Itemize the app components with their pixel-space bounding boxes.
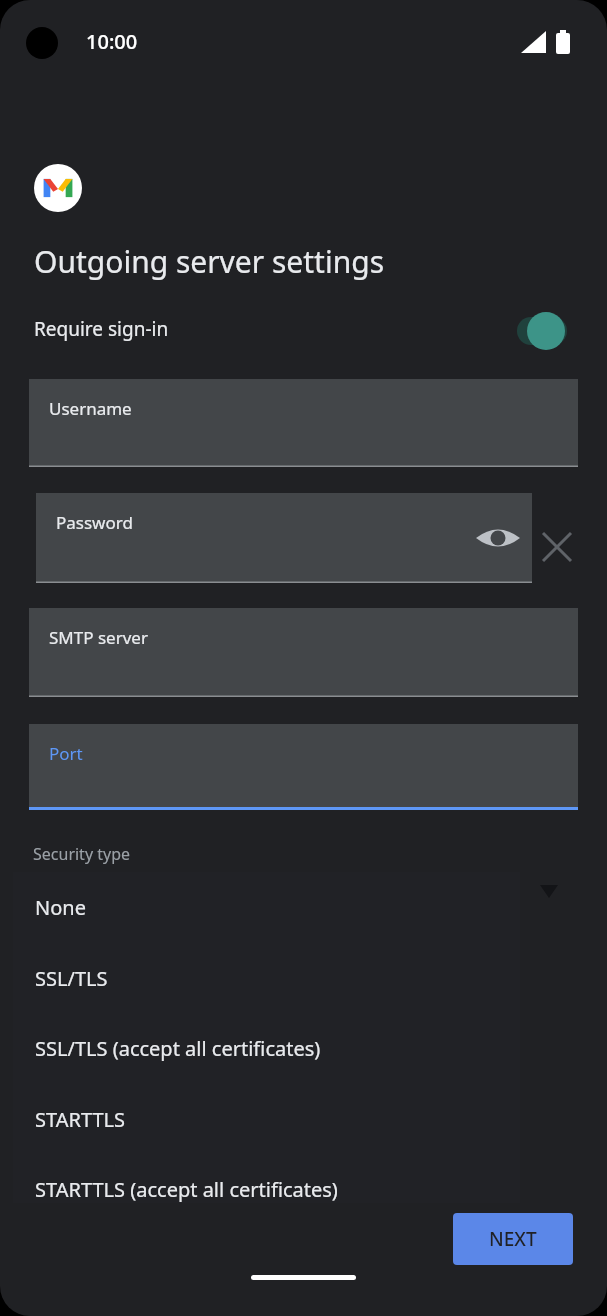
staticText: SMTP server [49, 626, 148, 649]
button[interactable]: None [13, 872, 520, 942]
staticText: STARTTLS (accept all certificates) [35, 1176, 338, 1203]
button[interactable]: SSL/TLS [13, 943, 520, 1013]
button[interactable]: Show password [472, 512, 524, 564]
staticText: None [35, 894, 86, 921]
button[interactable]: NEXT [453, 1213, 573, 1265]
staticText: SSL/TLS [35, 965, 108, 992]
button[interactable]: Username [29, 379, 578, 467]
staticText: Security type [33, 843, 131, 865]
staticText: SSL/TLS (accept all certificates) [35, 1035, 321, 1062]
button[interactable]: STARTTLS (accept all certificates) [13, 1154, 520, 1224]
staticText: STARTTLS [35, 1106, 126, 1133]
button[interactable]: Port [29, 724, 578, 810]
staticText: Require sign-in [34, 316, 169, 342]
button[interactable]: Password [36, 493, 532, 583]
staticText: 10:00 [86, 28, 138, 55]
staticText: NEXT [489, 1226, 537, 1252]
button[interactable]: SMTP server [29, 608, 578, 697]
button[interactable]: SSL/TLS (accept all certificates) [13, 1013, 520, 1083]
button[interactable]: Require sign-in [0, 300, 607, 358]
button[interactable]: Clear [533, 523, 581, 571]
staticText: Password [56, 511, 133, 534]
staticText: Outgoing server settings [34, 241, 385, 282]
button[interactable]: STARTTLS [13, 1084, 520, 1154]
staticText: Port [49, 742, 83, 765]
staticText: Username [49, 397, 132, 420]
